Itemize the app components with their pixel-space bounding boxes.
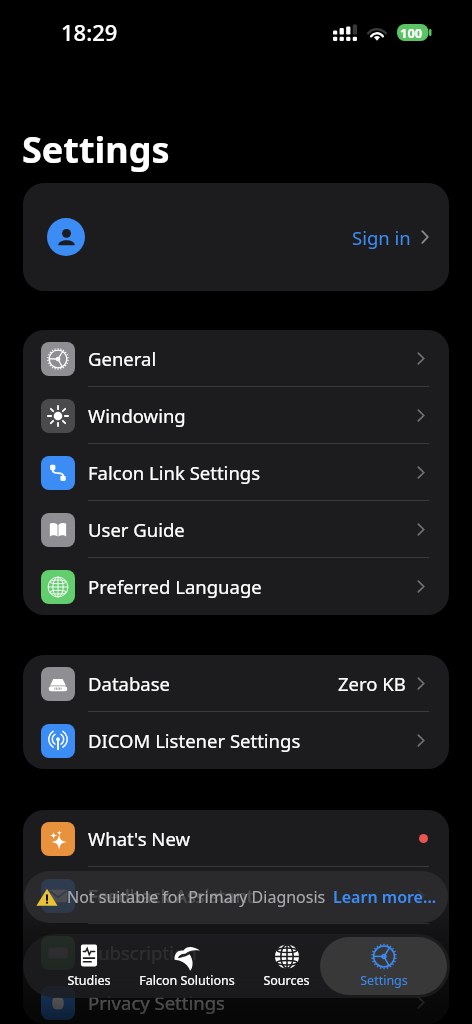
staticText: 100 xyxy=(400,24,423,41)
button[interactable]: Database xyxy=(23,655,449,712)
button[interactable]: Settings xyxy=(320,934,447,998)
button[interactable]: Windowing xyxy=(23,387,449,444)
button[interactable]: Sources xyxy=(246,934,327,998)
button[interactable]: General xyxy=(23,330,449,387)
staticText: Preferred Language xyxy=(88,574,262,599)
staticText: General xyxy=(88,346,157,371)
button[interactable]: Studies xyxy=(23,934,155,998)
staticText: Zero KB xyxy=(338,671,406,696)
staticText: Not suitable for Primary Diagnosis xyxy=(67,886,326,908)
button[interactable]: Falcon Solutions xyxy=(120,934,254,998)
staticText: Learn more... xyxy=(333,886,437,908)
button[interactable]: Not suitable for Primary Diagnosis xyxy=(24,871,448,923)
staticText: Windowing xyxy=(88,403,186,428)
staticText: Feedback Assistant xyxy=(88,883,254,908)
staticText: Subscription xyxy=(88,940,197,965)
staticText: Falcon Link Settings xyxy=(88,460,261,485)
staticText: 18:29 xyxy=(61,17,118,47)
staticText: Sign in xyxy=(352,225,411,250)
button[interactable]: User Guide xyxy=(23,501,449,558)
staticText: Sources xyxy=(263,972,310,989)
staticText: User Guide xyxy=(88,517,185,542)
staticText: Falcon Solutions xyxy=(139,972,235,989)
staticText: Database xyxy=(88,671,170,696)
button[interactable]: Privacy Settings xyxy=(23,981,449,1024)
staticText: DICOM Listener Settings xyxy=(88,728,301,753)
button[interactable]: Feedback Assistant xyxy=(23,867,449,924)
staticText: Settings xyxy=(22,125,170,174)
staticText: Settings xyxy=(360,972,408,989)
staticText: What's New xyxy=(88,826,191,851)
button[interactable]: Preferred Language xyxy=(23,558,449,615)
button[interactable]: Subscription xyxy=(23,924,449,981)
staticText: Privacy Settings xyxy=(88,990,225,1015)
button[interactable]: DICOM Listener Settings xyxy=(23,712,449,769)
staticText: Studies xyxy=(67,972,111,989)
button[interactable]: Falcon Link Settings xyxy=(23,444,449,501)
button[interactable]: Sign in xyxy=(23,183,449,291)
button[interactable]: What's New xyxy=(23,810,449,867)
